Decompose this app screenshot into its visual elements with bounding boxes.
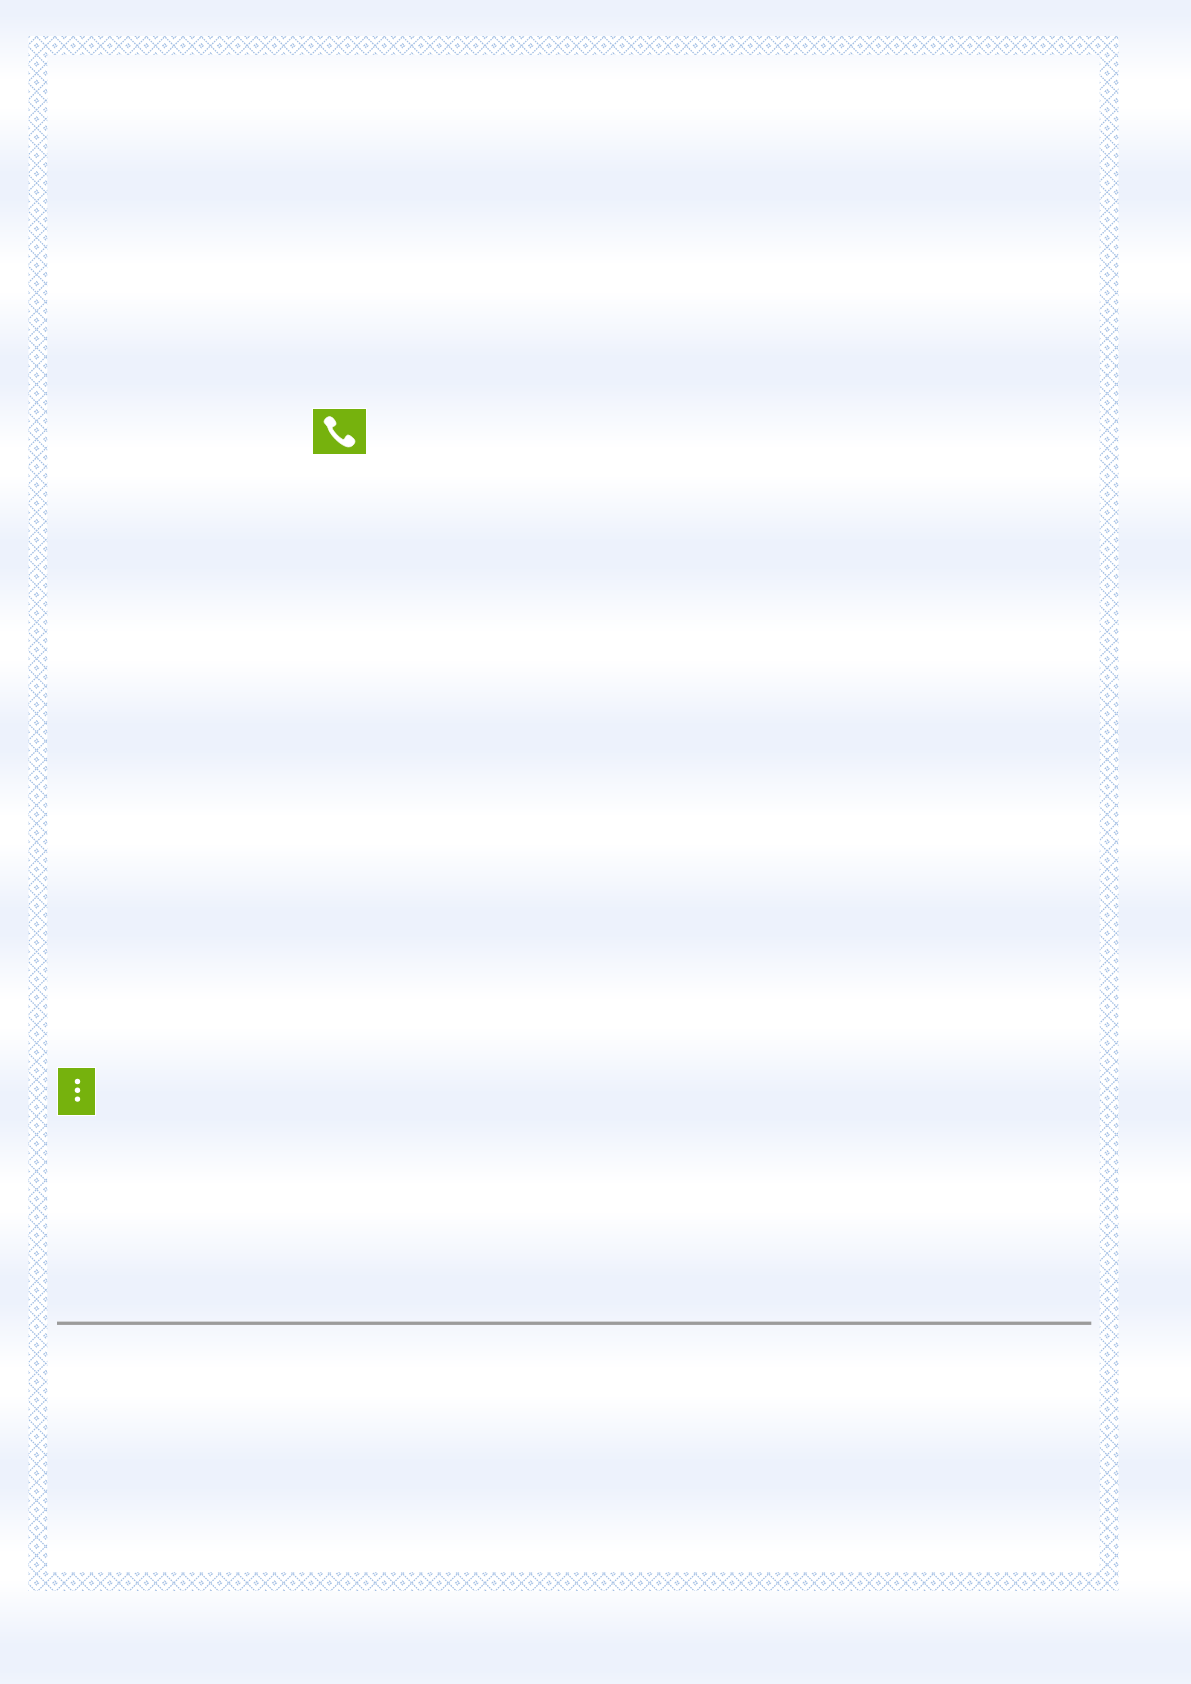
button[interactable]: More options (58, 1068, 95, 1115)
button[interactable]: Call (313, 409, 366, 454)
